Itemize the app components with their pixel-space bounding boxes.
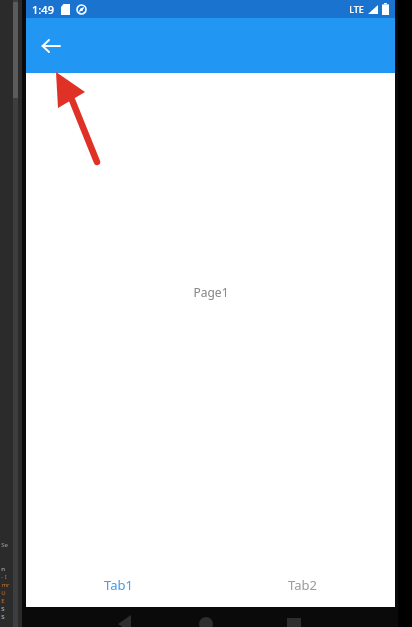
staticText: Page1 [193, 284, 229, 300]
staticText: Se [1, 541, 8, 549]
button[interactable]: Tab1 [26, 563, 210, 607]
staticText: n [1, 565, 5, 573]
staticText: E [1, 597, 5, 605]
staticText: 1:49 [32, 2, 54, 17]
staticText: LTE [349, 3, 364, 15]
staticText: S [1, 605, 5, 613]
button[interactable]: Tab2 [210, 563, 395, 607]
button[interactable]: Back [36, 31, 66, 61]
staticText: mr [1, 581, 10, 589]
staticText: S [1, 613, 5, 621]
staticText: - I [1, 573, 7, 581]
staticText: U [1, 589, 6, 597]
staticText: Tab2 [288, 576, 317, 594]
staticText: Tab1 [104, 576, 133, 594]
